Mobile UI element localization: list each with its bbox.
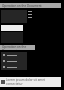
- button[interactable]: [1, 64, 27, 70]
- staticText: Operation on the Document: [2, 4, 42, 8]
- button[interactable]: [1, 58, 27, 64]
- button[interactable]: [1, 52, 27, 58]
- button[interactable]: Operation on the Document: [0, 3, 61, 8]
- button[interactable]: Operation on the Document: [0, 45, 35, 50]
- staticText: Operation on the Document: [2, 45, 35, 50]
- staticText: Lorem ipsum dolor sit amet consectetur: [6, 78, 61, 86]
